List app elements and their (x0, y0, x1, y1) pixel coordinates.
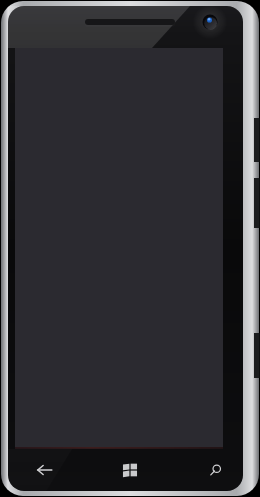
button[interactable]: Search (185, 449, 247, 493)
button[interactable]: Start (99, 449, 161, 493)
button[interactable]: Back (14, 449, 76, 493)
